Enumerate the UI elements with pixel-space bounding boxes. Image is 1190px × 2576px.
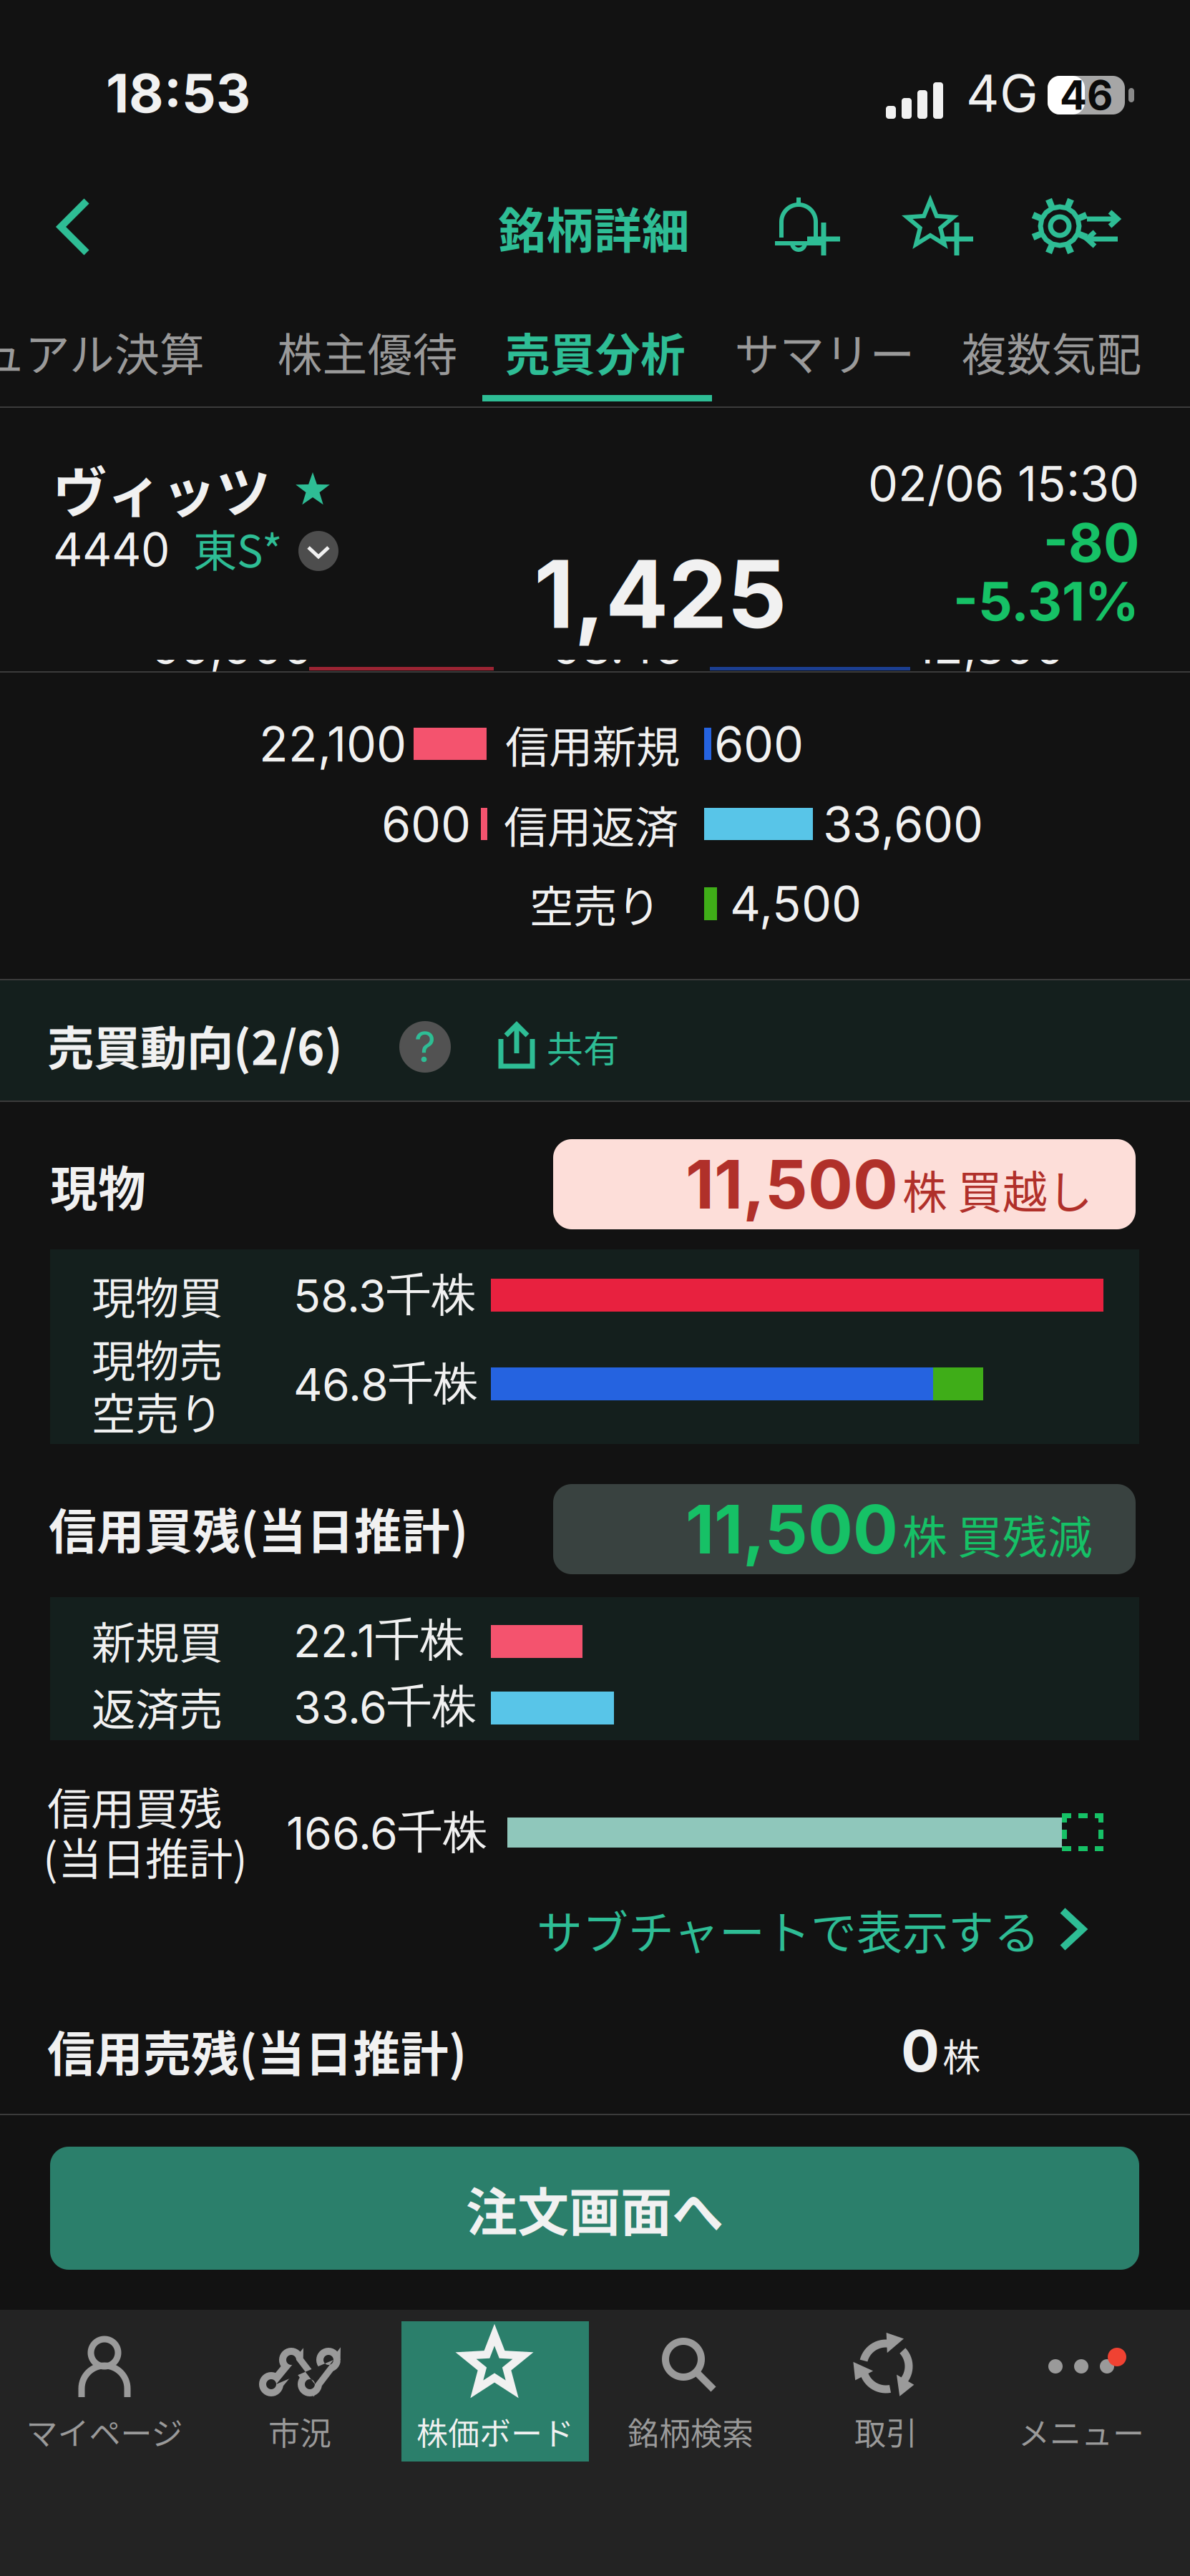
staticText: 02/06 15:30 xyxy=(868,455,1139,513)
staticText: 銘柄検索 xyxy=(628,2409,753,2454)
staticText: 33,600 xyxy=(823,795,983,853)
button[interactable]: 市況 xyxy=(206,2321,394,2462)
staticText: マイページ xyxy=(26,2409,183,2454)
button[interactable]: Back xyxy=(24,183,125,272)
staticText: 株 買越し xyxy=(902,1157,1093,1221)
staticText: 空売り xyxy=(92,1379,223,1443)
staticText: ヴィッツ xyxy=(53,449,270,528)
staticText: 市況 xyxy=(268,2409,331,2454)
staticText: 12,300 xyxy=(915,617,1065,675)
staticText: 空売り xyxy=(530,872,660,936)
staticText: 22.1千株 xyxy=(293,1612,465,1668)
staticText: -80 xyxy=(1043,510,1139,575)
button[interactable]: Help xyxy=(399,1021,451,1073)
button[interactable]: 株価ボード xyxy=(401,2321,589,2462)
staticText: 18:53 xyxy=(106,61,250,125)
staticText: -5.31% xyxy=(953,569,1139,633)
button[interactable]: マイページ xyxy=(11,2321,198,2462)
staticText: 銘柄詳細 xyxy=(498,193,690,262)
staticText: 現物買 xyxy=(92,1263,223,1327)
staticText: 4,500 xyxy=(730,875,862,933)
staticText: サブチャートで表示する xyxy=(537,1896,1040,1962)
staticText: 信用新規 xyxy=(505,712,680,776)
staticText: 166.6千株 xyxy=(286,1804,488,1861)
staticText: 33.6千株 xyxy=(293,1678,477,1735)
staticText: 売買分析 xyxy=(505,319,686,384)
staticText: 信用買残(当日推計) xyxy=(49,1494,468,1563)
staticText: 11,500 xyxy=(686,1489,898,1569)
staticText: 現物売 xyxy=(92,1326,223,1390)
staticText: ュアル決算 xyxy=(0,319,205,384)
button[interactable]: Price alert xyxy=(764,183,872,275)
button[interactable]: 複数気配 xyxy=(942,309,1161,394)
staticText: 4G xyxy=(966,62,1038,124)
staticText: 注文画面へ xyxy=(466,2171,723,2246)
staticText: 600 xyxy=(714,715,804,773)
staticText: 58.3千株 xyxy=(293,1267,477,1323)
staticText: 取引 xyxy=(854,2409,917,2454)
staticText: 株価ボード xyxy=(416,2409,574,2454)
button[interactable]: 銘柄検索 xyxy=(597,2321,784,2462)
button[interactable]: 売買分析 xyxy=(481,309,710,394)
staticText: 信用買残 xyxy=(47,1774,222,1838)
staticText: サマリー xyxy=(735,319,915,384)
staticText: 22,100 xyxy=(259,715,406,773)
button[interactable]: 注文画面へ xyxy=(50,2147,1139,2270)
staticText: 信用売残(当日推計) xyxy=(47,2016,467,2085)
button[interactable]: ュアル決算 xyxy=(0,309,229,394)
button[interactable]: 株主優待 xyxy=(255,309,479,394)
staticText: 東S* xyxy=(193,516,283,580)
staticText: 46 xyxy=(1060,71,1113,119)
staticText: 11,500 xyxy=(686,1144,898,1225)
button[interactable]: メニュー xyxy=(987,2321,1175,2462)
button[interactable]: サブチャートで表示する xyxy=(537,1888,1190,1971)
staticText: 46.8千株 xyxy=(293,1356,479,1412)
button[interactable]: Settings xyxy=(1032,182,1146,276)
staticText: 600 xyxy=(381,795,471,853)
staticText: 株 xyxy=(942,2027,980,2083)
staticText: 4440 xyxy=(53,522,170,577)
staticText: 新規買 xyxy=(92,1608,223,1672)
staticText: 0 xyxy=(901,2016,940,2085)
button[interactable]: サマリー xyxy=(716,309,934,394)
staticText: 信用返済 xyxy=(504,793,678,856)
staticText: 98.45 xyxy=(552,617,684,675)
staticText: (当日推計) xyxy=(43,1824,248,1888)
staticText: 複数気配 xyxy=(961,319,1142,384)
staticText: 1,425 xyxy=(534,537,787,650)
staticText: 株 買残減 xyxy=(902,1501,1093,1566)
button[interactable]: 共有 xyxy=(494,1009,708,1085)
staticText: 返済売 xyxy=(92,1675,223,1738)
staticText: ? xyxy=(414,1021,436,1072)
staticText: 現物 xyxy=(50,1151,146,1220)
button[interactable]: 取引 xyxy=(792,2321,980,2462)
staticText: 株主優待 xyxy=(277,319,458,384)
button[interactable]: Add to watchlist xyxy=(897,183,1005,275)
staticText: 共有 xyxy=(547,1021,620,1073)
staticText: 売買動向(2/6) xyxy=(47,1011,343,1079)
staticText: メニュー xyxy=(1018,2409,1144,2454)
staticText: 99,900 xyxy=(152,617,313,675)
